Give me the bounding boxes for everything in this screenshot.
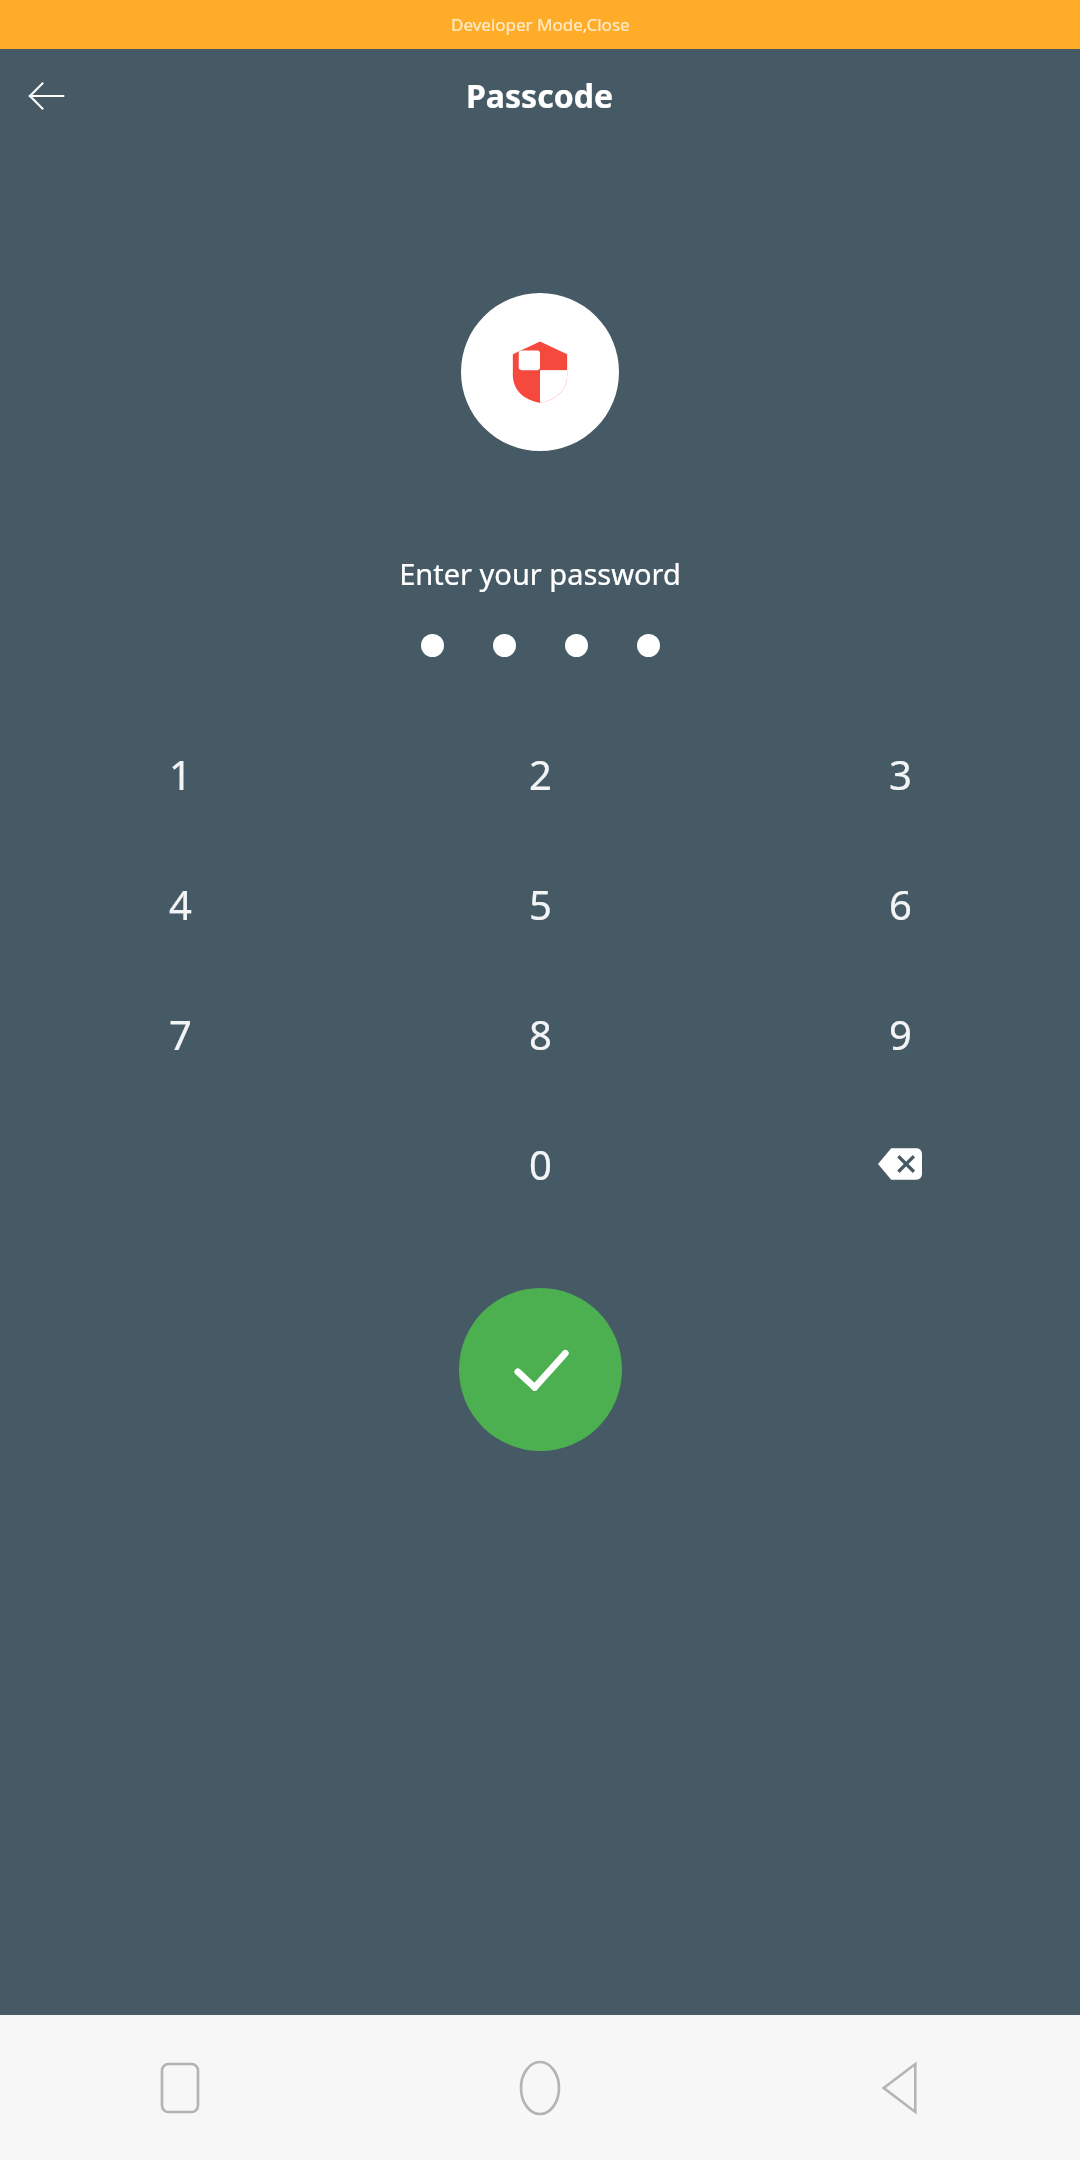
staticText: 6: [889, 877, 912, 931]
button[interactable]: Developer Mode,Close: [0, 0, 1080, 49]
button[interactable]: Recent apps: [0, 2015, 360, 2160]
button[interactable]: 5: [360, 839, 720, 969]
button[interactable]: 3: [720, 709, 1080, 839]
button[interactable]: Delete: [720, 1099, 1080, 1229]
staticText: 1: [169, 747, 192, 801]
button[interactable]: Confirm passcode: [459, 1288, 622, 1451]
button[interactable]: Home: [360, 2015, 720, 2160]
staticText: 0: [529, 1137, 552, 1191]
button[interactable]: 8: [360, 969, 720, 1099]
staticText: 8: [529, 1007, 552, 1061]
button[interactable]: 1: [0, 709, 360, 839]
staticText: 9: [889, 1007, 912, 1061]
button[interactable]: 2: [360, 709, 720, 839]
button[interactable]: 7: [0, 969, 360, 1099]
button[interactable]: 4: [0, 839, 360, 969]
staticText: 7: [169, 1007, 192, 1061]
button[interactable]: Back: [12, 62, 80, 130]
staticText: Developer Mode,Close: [451, 13, 630, 36]
button[interactable]: 0: [360, 1099, 720, 1229]
staticText: 2: [529, 747, 552, 801]
staticText: Passcode: [466, 74, 614, 118]
staticText: 3: [889, 747, 912, 801]
staticText: 4: [169, 877, 192, 931]
staticText: 5: [529, 877, 552, 931]
staticText: Enter your password: [0, 554, 1080, 593]
button[interactable]: Back: [720, 2015, 1080, 2160]
button[interactable]: 9: [720, 969, 1080, 1099]
button[interactable]: 6: [720, 839, 1080, 969]
